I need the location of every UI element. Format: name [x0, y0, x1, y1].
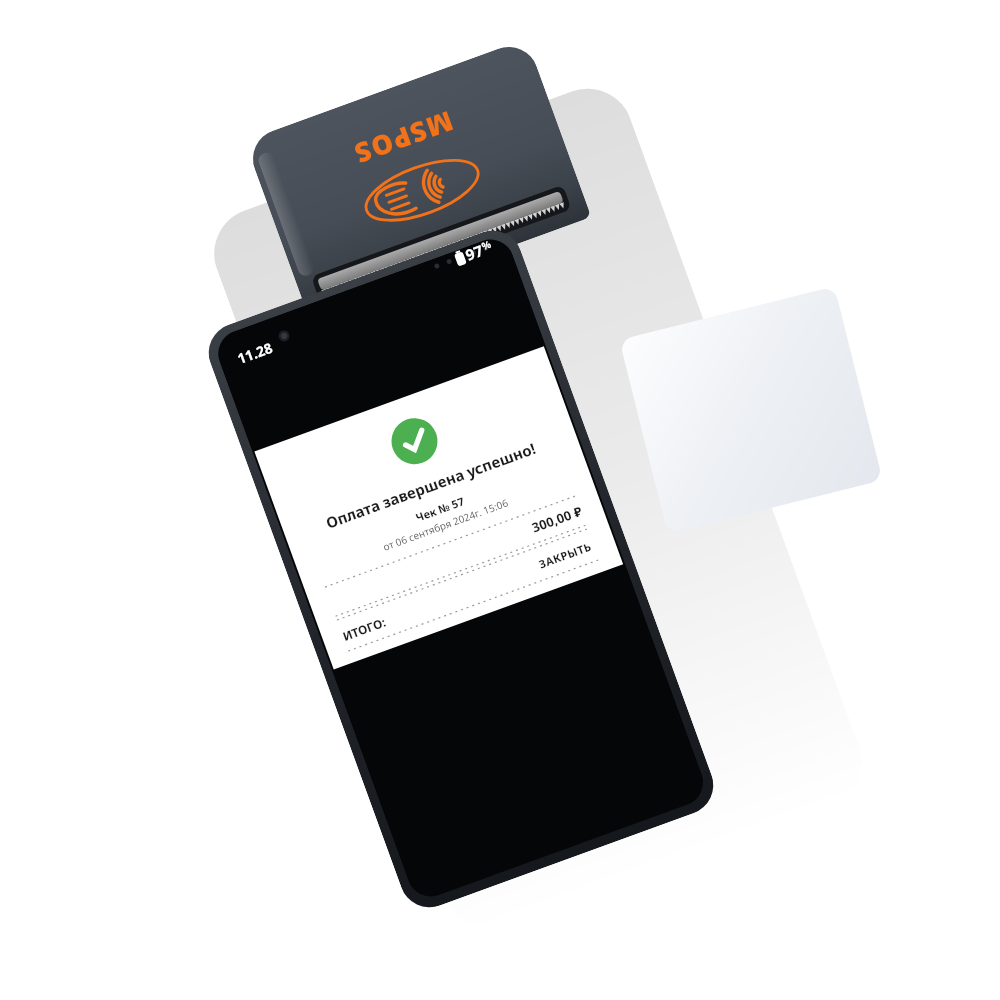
staticText: 97 [463, 242, 486, 265]
staticText: % [480, 238, 494, 253]
staticText: MSPOS [348, 103, 458, 173]
staticText: ЗАКРЫТЬ [537, 539, 593, 571]
staticText: ИТОГО: [340, 613, 388, 644]
staticText: 300,00 ₽ [529, 502, 585, 537]
other: Contactless bank card [619, 286, 883, 534]
staticText: от 06 сентября 2024г. 15:06 [380, 495, 510, 554]
button[interactable]: ЗАКРЫТЬ [532, 534, 598, 576]
staticText: Чек № 57 [413, 493, 466, 525]
staticText: Оплата завершена успешно! [323, 438, 538, 533]
staticText: 11.28 [234, 338, 275, 368]
